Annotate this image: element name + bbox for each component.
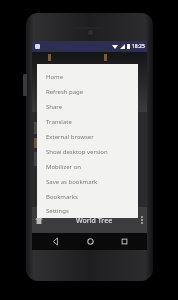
staticText: 18:25 bbox=[132, 43, 145, 50]
staticText: World Tree bbox=[76, 216, 113, 226]
staticText: Save as bookmark bbox=[46, 178, 98, 186]
staticText: Show desktop version bbox=[46, 148, 108, 156]
button[interactable]: Home bbox=[79, 233, 101, 250]
button[interactable]: Settings bbox=[37, 204, 138, 218]
button[interactable]: Bookmarks bbox=[37, 189, 138, 204]
button[interactable]: Mobilizer on bbox=[37, 159, 138, 174]
staticText: Mobilizer on bbox=[46, 163, 81, 171]
staticText: Bookmarks bbox=[46, 193, 78, 201]
button[interactable]: Save as bookmark bbox=[37, 174, 138, 189]
staticText: Settings bbox=[46, 207, 69, 215]
button[interactable]: Recent apps bbox=[113, 233, 135, 250]
staticText: Share bbox=[46, 103, 63, 111]
button[interactable]: Translate bbox=[37, 114, 138, 129]
button[interactable]: Share bbox=[37, 99, 138, 114]
button[interactable]: Home bbox=[37, 69, 138, 84]
button[interactable]: Refresh page bbox=[37, 84, 138, 99]
staticText: Refresh page bbox=[46, 88, 84, 96]
button[interactable]: External browser bbox=[37, 129, 138, 144]
button[interactable]: Back bbox=[44, 233, 66, 250]
staticText: External browser bbox=[46, 133, 94, 141]
staticText: Home bbox=[46, 73, 64, 81]
button[interactable]: Show desktop version bbox=[37, 144, 138, 159]
staticText: Translate bbox=[46, 118, 72, 126]
